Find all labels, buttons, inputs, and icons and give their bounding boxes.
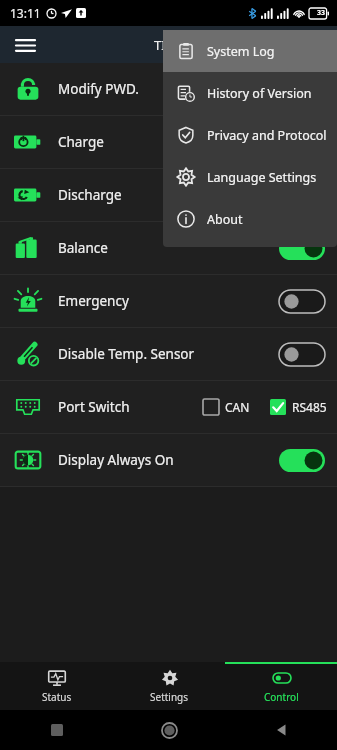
staticText: Emergency [58,292,129,310]
button[interactable]: Settings [113,662,225,710]
staticText: CAN [225,399,250,415]
button[interactable]: RS485 [270,399,327,415]
button[interactable]: Recents [0,710,113,750]
button[interactable]: Privacy and Protocol [163,114,337,156]
button[interactable]: Display Always On [0,434,337,486]
staticText: Display Always On [58,451,174,469]
button[interactable]: Language Settings [163,156,337,198]
button[interactable]: History of Version [163,72,337,114]
button[interactable]: Toggle off [279,290,325,313]
button[interactable]: Home [113,710,225,750]
staticText: Language Settings [207,169,317,186]
button[interactable]: Toggle off [279,343,325,366]
button[interactable]: Port Switch [0,381,337,433]
button[interactable]: About [163,198,337,240]
button[interactable]: Balance [0,222,337,274]
staticText: Charge [58,133,104,151]
staticText: 33 [317,8,326,18]
staticText: 13:11 [10,5,41,21]
button[interactable]: Toggle on [279,449,325,472]
button[interactable]: CAN [203,399,250,415]
button[interactable]: Charge [0,116,337,168]
staticText: Status [42,690,72,704]
button[interactable]: Disable Temp. Sensor [0,328,337,380]
staticText: Port Switch [58,398,130,416]
button[interactable]: Toggle on [279,237,325,260]
staticText: RS485 [292,399,327,415]
staticText: Disable Temp. Sensor [58,345,195,363]
staticText: History of Version [207,85,312,102]
staticText: Privacy and Protocol [207,127,327,144]
button[interactable]: Control [225,662,337,710]
button[interactable]: Emergency [0,275,337,327]
button[interactable]: Back [225,710,337,750]
button[interactable]: Discharge [0,169,337,221]
button[interactable]: Status [0,662,113,710]
staticText: TIME: 14 [154,36,207,54]
staticText: About [207,211,243,228]
staticText: Discharge [58,186,122,204]
button[interactable]: System Log [163,30,337,72]
staticText: Modify PWD. [58,80,139,98]
staticText: Settings [150,690,189,704]
staticText: System Log [207,43,275,60]
staticText: Control [264,690,299,704]
button[interactable]: Menu [8,28,42,62]
staticText: Balance [58,239,108,257]
button[interactable]: Modify PWD. [0,63,337,115]
